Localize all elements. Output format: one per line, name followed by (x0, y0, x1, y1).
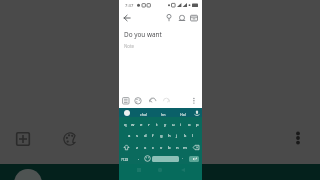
button[interactable]: Voice input (193, 109, 201, 117)
button[interactable]: x (141, 142, 149, 153)
button[interactable]: u (169, 119, 177, 130)
staticText: b (168, 145, 171, 151)
staticText: . (182, 155, 184, 160)
button[interactable]: j (173, 130, 181, 141)
button[interactable]: a (125, 130, 133, 141)
staticText: i (180, 122, 182, 128)
staticText: n (176, 145, 179, 151)
button[interactable]: Add (16, 132, 30, 146)
staticText: x (144, 145, 147, 151)
button[interactable]: n (173, 142, 181, 153)
button[interactable]: Back (121, 12, 133, 24)
staticText: f (152, 133, 154, 139)
staticText: c (152, 145, 155, 151)
staticText: , (138, 155, 140, 160)
staticText: s (136, 133, 139, 139)
button[interactable]: c (149, 142, 157, 153)
staticText: l (192, 133, 194, 139)
button[interactable]: Archive (188, 12, 200, 24)
staticText: r (148, 122, 150, 128)
staticText: t (156, 122, 158, 128)
staticText: a (128, 133, 131, 139)
staticText: q (124, 122, 127, 128)
button[interactable]: k (181, 130, 189, 141)
staticText: Note (124, 43, 135, 49)
button[interactable]: r (145, 119, 153, 130)
button[interactable]: t (153, 119, 161, 130)
button[interactable]: Palette (63, 132, 77, 146)
button[interactable]: y (161, 119, 169, 130)
staticText: ?123 (121, 157, 129, 162)
button[interactable]: Pin (163, 12, 175, 24)
staticText: w (131, 122, 135, 128)
button[interactable]: o (185, 119, 193, 130)
button[interactable]: Reminder (176, 12, 188, 24)
button[interactable]: h (165, 130, 173, 141)
staticText: g (160, 133, 163, 139)
staticText: Do you want (124, 30, 162, 39)
button[interactable]: g (157, 130, 165, 141)
button[interactable]: Emoji (144, 155, 151, 162)
button[interactable]: s (133, 130, 141, 141)
button[interactable]: m (181, 142, 189, 153)
button[interactable]: More options (291, 131, 305, 145)
button[interactable]: Shift (121, 142, 132, 153)
staticText: Hal (180, 112, 186, 117)
staticText: 7:37 (125, 3, 134, 9)
staticText: u (172, 122, 175, 128)
staticText: e (140, 122, 143, 128)
button[interactable]: d (141, 130, 149, 141)
button[interactable]: p (193, 119, 201, 130)
button[interactable]: z (133, 142, 141, 153)
staticText: chal (140, 112, 147, 117)
staticText: p (196, 122, 199, 128)
staticText: j (176, 133, 178, 139)
button[interactable]: i (177, 119, 185, 130)
staticText: y (164, 122, 167, 128)
button[interactable]: e (137, 119, 145, 130)
button[interactable]: b (165, 142, 173, 153)
staticText: hn (161, 112, 166, 117)
staticText: d (144, 133, 147, 139)
staticText: k (184, 133, 187, 139)
button[interactable]: Space (152, 156, 179, 162)
staticText: z (136, 145, 138, 151)
button[interactable]: Backspace (190, 142, 201, 153)
button[interactable]: l (189, 130, 197, 141)
button[interactable]: w (129, 119, 137, 130)
staticText: o (188, 122, 191, 128)
button[interactable]: q (121, 119, 129, 130)
staticText: h (168, 133, 171, 139)
button[interactable]: Enter (189, 156, 199, 162)
button[interactable]: f (149, 130, 157, 141)
staticText: m (183, 145, 187, 151)
staticText: v (160, 145, 163, 151)
button[interactable]: v (157, 142, 165, 153)
button[interactable]: Google (124, 110, 130, 116)
